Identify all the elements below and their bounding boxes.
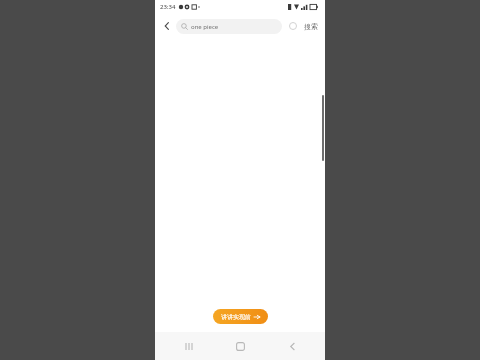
button[interactable]: Back [274, 333, 310, 359]
button[interactable]: Recent apps [171, 333, 207, 359]
button[interactable]: 讲讲实现前 [213, 309, 268, 324]
staticText: one piece [191, 23, 219, 31]
button[interactable]: one piece [176, 19, 282, 34]
button[interactable]: Clear [286, 19, 300, 33]
button[interactable]: Home [222, 333, 258, 359]
button[interactable]: Back [158, 17, 176, 35]
staticText: 搜索 [304, 22, 318, 31]
staticText: 讲讲实现前 [221, 313, 251, 321]
button[interactable]: 搜索 [302, 20, 320, 33]
staticText: 23:34 [160, 3, 176, 11]
